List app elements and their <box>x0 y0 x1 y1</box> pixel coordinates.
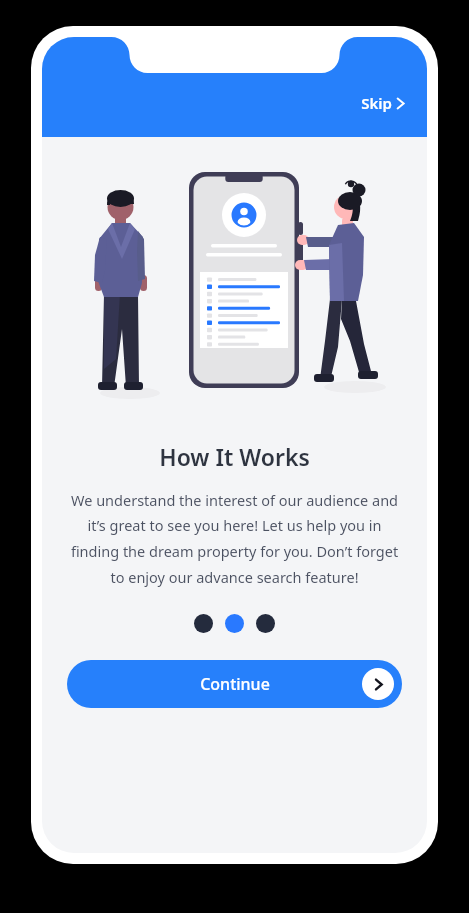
staticText: Skip <box>361 93 392 113</box>
button[interactable]: Page indicator <box>256 614 275 633</box>
staticText: How It Works <box>159 441 310 472</box>
button[interactable]: Skip <box>353 89 413 117</box>
staticText: Continue <box>200 673 270 695</box>
button[interactable]: Page indicator <box>225 614 244 633</box>
staticText: We understand the interest of our audien… <box>70 490 399 588</box>
button[interactable]: Page indicator <box>194 614 213 633</box>
button[interactable]: Continue <box>67 660 402 708</box>
